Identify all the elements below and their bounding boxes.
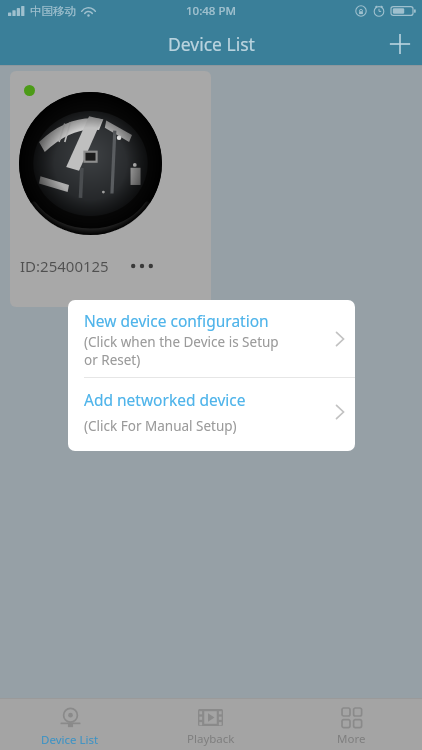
staticText: or Reset) (84, 351, 141, 369)
staticText: Device List (41, 732, 99, 748)
button[interactable]: New device configuration (68, 300, 355, 377)
staticText: More (337, 731, 366, 747)
button[interactable]: More (281, 703, 422, 747)
button[interactable]: Add networked device (68, 378, 355, 445)
staticText: ID:25400125 (20, 256, 109, 276)
staticText: (Click For Manual Setup) (84, 417, 237, 435)
button[interactable]: More options (125, 252, 159, 280)
staticText: Playback (187, 731, 235, 747)
staticText: 10:48 PM (186, 3, 237, 19)
staticText: (Click when the Device is Setup (84, 333, 279, 351)
staticText: New device configuration (84, 310, 269, 331)
button[interactable]: Add device (378, 22, 422, 65)
staticText: Device List (168, 32, 255, 56)
button[interactable]: Device List (0, 701, 140, 748)
button[interactable]: Playback (140, 702, 281, 747)
staticText: Add networked device (84, 389, 246, 410)
button[interactable]: ID:25400125 (10, 71, 211, 307)
staticText: 中国移动 (30, 4, 76, 18)
